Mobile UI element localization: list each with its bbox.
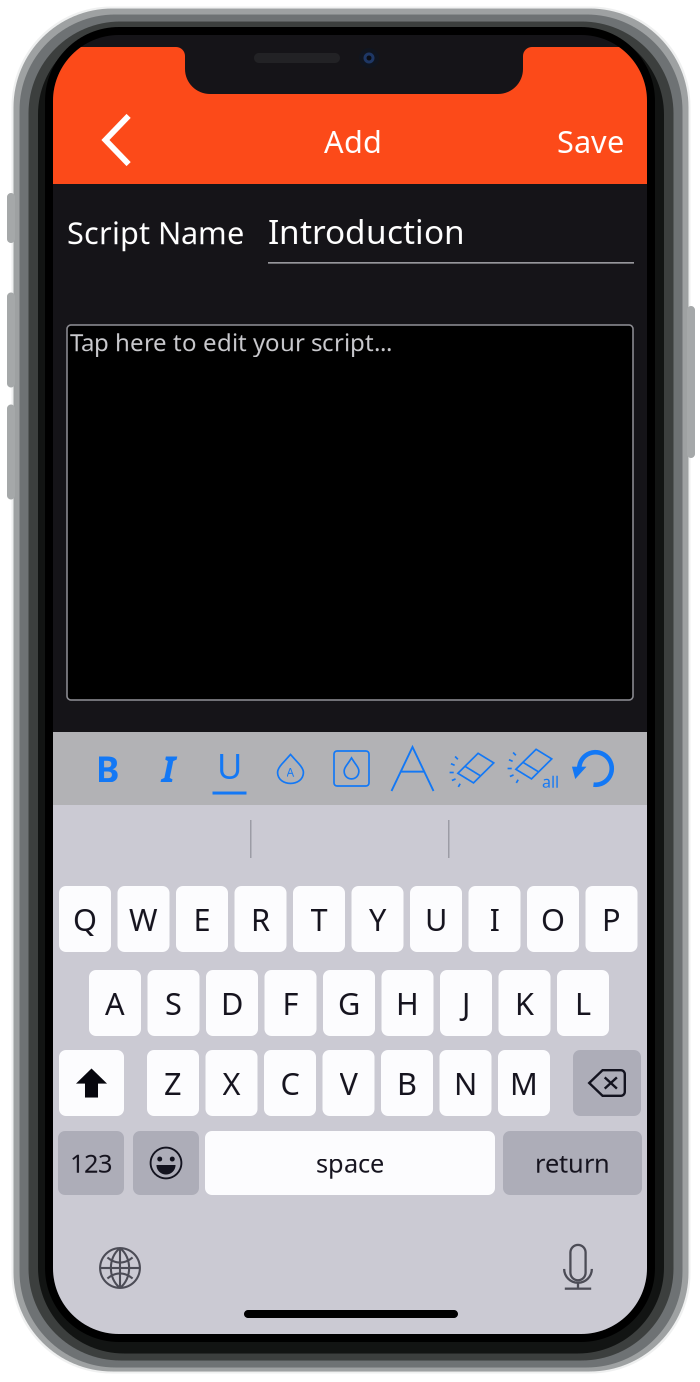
button[interactable]: Back [85,108,149,172]
staticText: Script Name [67,212,244,253]
staticText: N [454,1063,477,1103]
staticText: Y [369,899,386,939]
button[interactable]: Underline [199,732,260,805]
button[interactable]: Y [351,886,403,952]
staticText: Q [73,899,97,939]
button[interactable]: Z [147,1050,199,1116]
button[interactable]: Emoji [133,1131,199,1195]
button[interactable]: T [293,886,345,952]
staticText: T [310,899,327,939]
staticText: 123 [70,1146,112,1180]
button[interactable]: Dictation [542,1235,614,1301]
staticText: B [397,1063,417,1103]
staticText: P [602,899,621,939]
button[interactable]: space [205,1131,495,1195]
staticText: I [161,745,175,792]
staticText: Tap here to edit your script... [70,326,392,358]
staticText: M [510,1063,538,1103]
button[interactable]: Erase [443,732,504,805]
button[interactable]: M [498,1050,550,1116]
button[interactable]: Shift [59,1050,124,1116]
button[interactable]: G [323,970,375,1036]
button[interactable]: Bold [77,732,138,805]
button[interactable]: K [498,970,550,1036]
staticText: space [316,1146,384,1180]
button[interactable]: F [264,970,316,1036]
button[interactable]: L [557,970,609,1036]
staticText: C [280,1063,299,1103]
button[interactable]: P [585,886,637,952]
button[interactable]: Redo [626,732,687,805]
button[interactable]: Text colour [260,732,321,805]
staticText: return [535,1146,610,1180]
staticText: H [396,983,419,1023]
staticText: D [221,983,243,1023]
staticText: W [129,899,158,939]
button[interactable]: Delete [573,1050,641,1116]
button[interactable]: Erase all [504,732,565,805]
button[interactable]: N [439,1050,491,1116]
button[interactable]: A [89,970,141,1036]
staticText: F [282,983,298,1023]
staticText: A [105,983,125,1023]
button[interactable]: W [117,886,169,952]
button[interactable]: Undo [565,732,626,805]
button[interactable]: Font size [382,732,443,805]
button[interactable]: Switch keyboard [84,1235,156,1301]
button[interactable]: X [205,1050,257,1116]
staticText: Add [324,121,382,161]
staticText: U [217,742,242,788]
button[interactable]: U [410,886,462,952]
button[interactable]: O [527,886,579,952]
staticText: G [338,983,360,1023]
staticText: all [542,771,559,792]
button[interactable]: V [322,1050,374,1116]
staticText: K [515,983,534,1023]
staticText: O [541,899,565,939]
button[interactable]: B [381,1050,433,1116]
button[interactable]: J [440,970,492,1036]
staticText: I [489,899,499,939]
staticText: X [222,1063,240,1103]
button[interactable]: Highlight colour [321,732,382,805]
staticText: A [286,764,294,780]
button[interactable]: R [234,886,286,952]
button[interactable]: return [503,1131,642,1195]
staticText: V [339,1063,357,1103]
staticText: B [95,745,119,792]
staticText: Introduction [268,209,465,253]
staticText: Z [164,1063,182,1103]
staticText: J [462,983,470,1023]
button[interactable]: Q [59,886,111,952]
button[interactable]: 123 [58,1131,124,1195]
button[interactable]: Save [496,121,624,161]
button[interactable]: E [176,886,228,952]
button[interactable]: H [381,970,433,1036]
staticText: L [575,983,591,1023]
button[interactable]: I [468,886,520,952]
staticText: R [251,899,270,939]
button[interactable]: Italic [138,732,199,805]
staticText: U [425,899,447,939]
button[interactable]: D [206,970,258,1036]
button[interactable]: C [264,1050,316,1116]
button[interactable]: S [147,970,199,1036]
staticText: E [193,899,210,939]
staticText: Save [557,121,624,161]
staticText: S [165,983,182,1023]
